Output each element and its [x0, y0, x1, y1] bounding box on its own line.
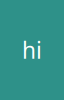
staticText: hi [22, 35, 42, 65]
